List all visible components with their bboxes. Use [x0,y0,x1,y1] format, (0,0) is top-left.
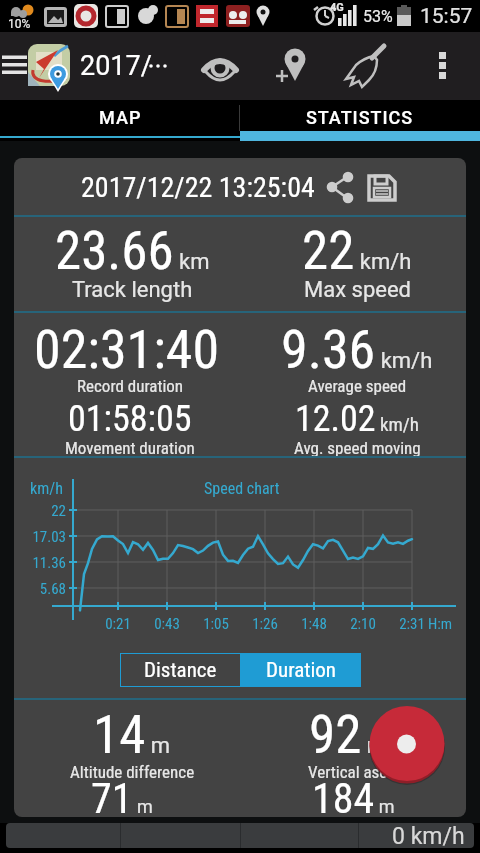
button[interactable] [369,706,445,782]
staticText: 22 km/h [302,220,412,282]
staticText: 15:57 [420,4,473,29]
button[interactable] [0,38,76,94]
button[interactable] [267,38,323,94]
staticText: 1:26 [243,615,287,633]
staticText: Record duration [77,376,184,396]
staticText: 53% [363,7,393,26]
staticText: Speed chart [204,479,280,498]
staticText: 2017/12/22 13:25:04 [81,171,315,204]
staticText: Vertical ascent [308,762,409,782]
staticText: Average speed [308,376,407,396]
staticText: STATISTICS [306,107,414,128]
staticText: 0:43 [145,615,189,633]
staticText: 14 m [93,704,171,766]
button[interactable]: STATISTICS [240,100,480,141]
staticText: Movement duration [65,438,195,458]
button[interactable] [417,38,469,94]
staticText: Duration [266,658,336,683]
staticText: 92 m [309,704,387,766]
button[interactable] [366,171,398,203]
staticText: Distance [144,658,217,683]
button[interactable]: MAP [0,100,240,141]
staticText: 22 [22,502,66,520]
staticText: 71 m [91,774,153,817]
staticText: 12.02 km/h [295,398,420,440]
staticText: Altitude difference [70,762,195,782]
staticText: 10% [8,17,31,31]
staticText: Track length [72,277,193,303]
button[interactable]: 0 km/h [6,823,474,848]
staticText: MAP [99,107,142,128]
staticText: km/h [30,479,63,498]
staticText: 2:10 [341,615,385,633]
staticText: 2:31 [390,615,434,633]
staticText: Max speed [304,277,411,303]
button[interactable] [326,171,356,201]
staticText: 02:31:40 [34,318,220,381]
staticText: 0 km/h [392,823,465,848]
button[interactable]: Duration [240,653,361,687]
staticText: 1:48 [292,615,336,633]
button[interactable] [342,38,398,94]
staticText: 01:58:05 [68,398,192,440]
staticText: 184 m [312,774,395,817]
staticText: Avg. speed moving [294,438,421,458]
staticText: 0:21 [96,615,140,633]
staticText: H:m [428,615,453,633]
staticText: 11.36 [22,554,66,572]
staticText: 23.66 km [55,220,210,282]
staticText: 17.03 [22,528,66,546]
staticText: 9.36 km/h [281,318,433,381]
staticText: 2017/ [80,50,152,82]
staticText: 4G [330,1,344,14]
staticText: 1:05 [194,615,238,633]
staticText: 5.68 [22,580,66,598]
button[interactable]: Distance [120,653,240,687]
button[interactable] [192,38,248,94]
